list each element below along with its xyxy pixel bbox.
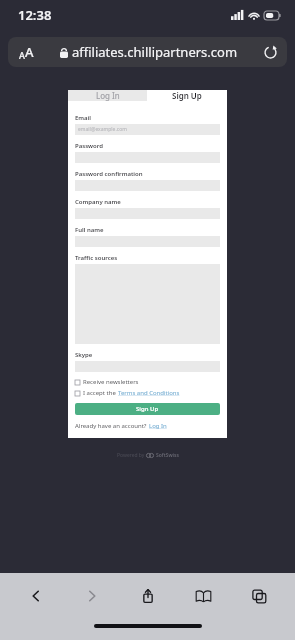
- button[interactable]: Sign Up: [147, 90, 227, 101]
- staticText: Powered by: [117, 452, 146, 459]
- button[interactable]: Reload: [253, 46, 287, 59]
- staticText: Company name: [75, 198, 121, 206]
- staticText: A: [19, 49, 25, 61]
- button[interactable]: Receive newsletters: [75, 378, 220, 386]
- button[interactable]: I accept the: [75, 389, 220, 397]
- button[interactable]: Share: [128, 576, 168, 616]
- staticText: Sign Up: [172, 90, 202, 101]
- staticText: Already have an account?: [75, 422, 149, 430]
- staticText: Password: [75, 142, 104, 150]
- button[interactable]: Terms and Conditions: [118, 389, 180, 397]
- button[interactable]: Log In: [68, 90, 147, 101]
- button[interactable]: Back: [16, 576, 56, 616]
- button[interactable]: Text size: [8, 37, 287, 67]
- staticText: Skype: [75, 351, 93, 359]
- button[interactable]: Sign Up: [75, 403, 220, 415]
- staticText: Email: [75, 114, 92, 122]
- staticText: Password confirmation: [75, 170, 143, 178]
- button[interactable]: Text size: [8, 43, 44, 61]
- staticText: I accept the: [83, 389, 118, 397]
- button[interactable]: Tabs: [239, 576, 279, 616]
- button[interactable]: Bookmarks: [183, 576, 223, 616]
- staticText: affiliates.chillipartners.com: [72, 43, 238, 61]
- staticText: Log In: [96, 90, 120, 101]
- button[interactable]: email@example.com: [75, 124, 220, 135]
- button[interactable]: Log In: [149, 422, 167, 430]
- staticText: 12:38: [18, 6, 52, 24]
- staticText: Traffic sources: [75, 254, 118, 262]
- staticText: email@example.com: [78, 126, 127, 133]
- staticText: Sign Up: [136, 405, 159, 413]
- staticText: Full name: [75, 226, 104, 234]
- staticText: Receive newsletters: [83, 378, 139, 386]
- staticText: SoftSwiss: [156, 452, 179, 459]
- button[interactable]: Forward: [72, 576, 112, 616]
- staticText: A: [25, 43, 34, 61]
